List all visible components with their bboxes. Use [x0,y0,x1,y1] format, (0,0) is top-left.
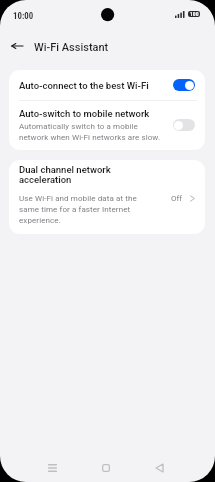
staticText: Automatically switch to a mobile network… [19,122,167,142]
button[interactable]: Back [146,455,172,481]
staticText: 10:00 [13,11,34,21]
staticText: Off [171,194,183,203]
button[interactable]: Toggle off [173,119,195,131]
button[interactable]: Auto-connect to the best Wi-Fi [9,70,205,100]
button[interactable]: Auto-switch to mobile network [9,100,205,150]
button[interactable]: Recents [39,455,65,481]
staticText: Auto-switch to mobile network [19,108,150,119]
staticText: Wi-Fi Assistant [34,41,109,54]
button[interactable]: Toggle on [173,79,195,91]
staticText: Auto-connect to the best Wi-Fi [19,80,167,91]
staticText: 100 [190,11,199,17]
staticText: Dual channel network acceleration [19,164,147,186]
button[interactable]: Home [93,455,119,481]
button[interactable]: Dual channel network acceleration [9,160,205,234]
button[interactable]: Back [5,34,29,58]
staticText: Use Wi-Fi and mobile data at the same ti… [19,194,147,225]
